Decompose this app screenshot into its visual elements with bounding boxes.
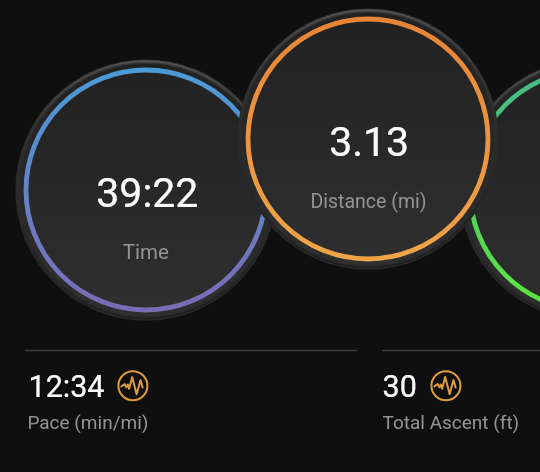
- button[interactable]: Total Ascent 30 feet: [378, 360, 540, 440]
- button[interactable]: Time 39:22: [15, 59, 277, 321]
- button[interactable]: Distance 3.13 miles: [237, 8, 499, 270]
- button[interactable]: Pace 12:34 per mile: [20, 360, 360, 440]
- button[interactable]: Elevation: [459, 59, 540, 321]
